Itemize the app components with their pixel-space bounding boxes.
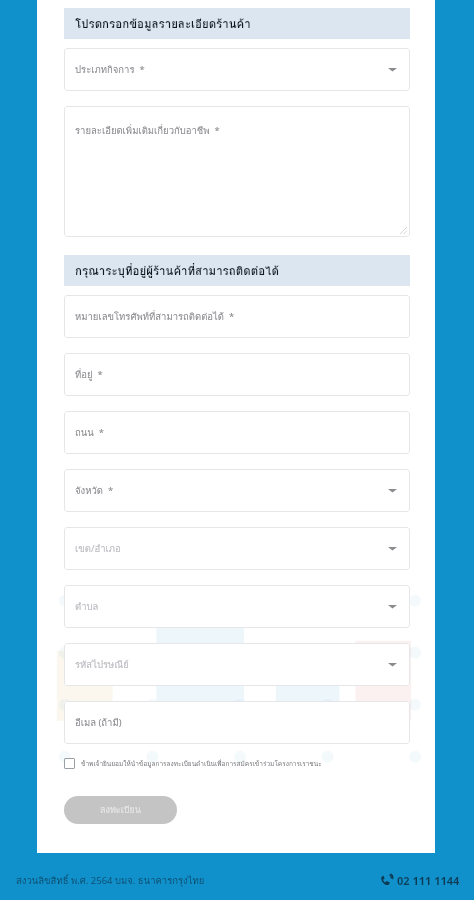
staticText: โปรดกรอกข้อมูลรายละเอียดร้านค้า: [75, 15, 251, 33]
staticText: ตำบล: [75, 599, 99, 614]
staticText: อีเมล (ถ้ามี): [75, 715, 122, 730]
staticText: กรุณาระบุที่อยู่ผู้ร้านค้าที่สามารถติดต่…: [75, 262, 279, 280]
staticText: รหัสไปรษณีย์: [75, 657, 129, 672]
button[interactable]: ข้าพเจ้ายินยอมให้นำข้อมูลการลงทะเบียนดำเ…: [64, 758, 410, 769]
button[interactable]: Call 02 111 1144: [378, 873, 460, 888]
button[interactable]: อีเมล (ถ้ามี): [64, 701, 410, 744]
staticText: ลงทะเบียน: [100, 803, 141, 817]
button[interactable]: ลงทะเบียน: [64, 796, 177, 824]
staticText: 02 111 1144: [397, 873, 460, 888]
button[interactable]: ตำบล: [64, 585, 410, 628]
staticText: ประเภทกิจการ *: [75, 62, 145, 77]
button[interactable]: ประเภทกิจการ *: [64, 48, 410, 91]
staticText: รายละเอียดเพิ่มเติมเกี่ยวกับอาชีพ *: [75, 123, 220, 138]
staticText: สงวนลิขสิทธิ์ พ.ศ. 2564 บมจ. ธนาคารกรุงไ…: [16, 873, 205, 888]
staticText: ที่อยู่ *: [75, 367, 103, 382]
button[interactable]: เขต/อำเภอ: [64, 527, 410, 570]
staticText: หมายเลขโทรศัพท์ที่สามารถติดต่อได้ *: [75, 309, 235, 324]
other: Call 02 111 1144: [378, 873, 393, 888]
button[interactable]: จังหวัด *: [64, 469, 410, 512]
button[interactable]: รายละเอียดเพิ่มเติมเกี่ยวกับอาชีพ *: [64, 106, 410, 237]
button[interactable]: ที่อยู่ *: [64, 353, 410, 396]
staticText: ข้าพเจ้ายินยอมให้นำข้อมูลการลงทะเบียนดำเ…: [81, 759, 322, 769]
staticText: เขต/อำเภอ: [75, 541, 121, 556]
staticText: ถนน *: [75, 425, 104, 440]
button[interactable]: ถนน *: [64, 411, 410, 454]
staticText: จังหวัด *: [75, 483, 114, 498]
button[interactable]: หมายเลขโทรศัพท์ที่สามารถติดต่อได้ *: [64, 295, 410, 338]
button[interactable]: รหัสไปรษณีย์: [64, 643, 410, 686]
